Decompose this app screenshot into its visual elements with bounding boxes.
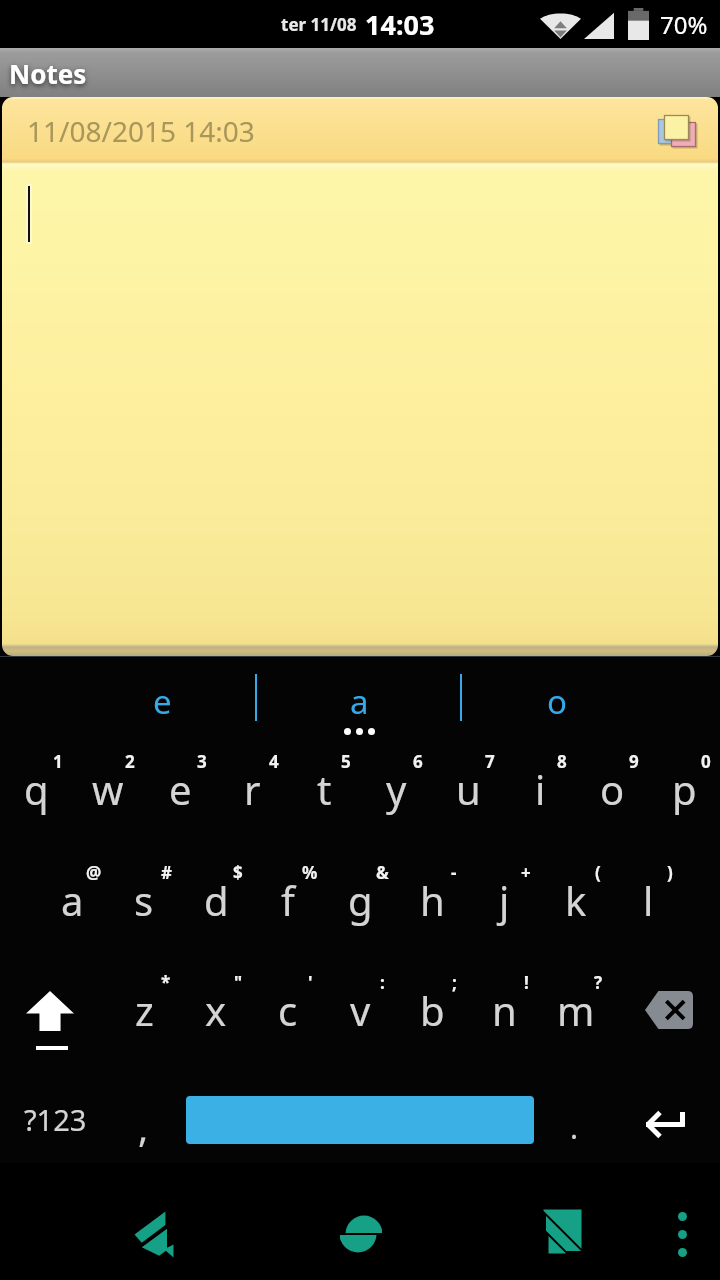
button[interactable]: ? [540, 965, 612, 1065]
button[interactable]: + [468, 855, 540, 955]
staticText: p [672, 762, 697, 816]
button[interactable] [2, 164, 718, 656]
staticText: - [451, 861, 457, 884]
staticText: + [521, 861, 531, 884]
staticText: " [234, 971, 243, 994]
staticText: n [492, 983, 517, 1037]
button[interactable]: * [108, 965, 180, 1065]
button[interactable]: 4 [216, 744, 288, 844]
staticText: 2 [125, 750, 135, 773]
staticText: o [600, 762, 625, 816]
button[interactable]: % [252, 855, 324, 955]
staticText: $ [233, 861, 243, 884]
staticText: 5 [341, 750, 351, 773]
button[interactable]: a [257, 658, 461, 742]
button[interactable]: ! [468, 965, 540, 1065]
button[interactable]: Note colour [642, 106, 702, 156]
button[interactable]: 0 [648, 744, 720, 844]
staticText: 9 [629, 750, 639, 773]
button[interactable]: - [396, 855, 468, 955]
staticText: & [376, 861, 389, 884]
button[interactable]: o [462, 658, 720, 742]
staticText: 70% [660, 8, 708, 41]
staticText: ' [308, 971, 313, 994]
staticText: % [302, 861, 318, 884]
staticText: 3 [197, 750, 207, 773]
staticText: ; [452, 971, 457, 994]
button[interactable]: ( [540, 855, 612, 955]
staticText: 6 [413, 750, 423, 773]
staticText: l [643, 873, 654, 927]
staticText: b [420, 983, 445, 1037]
staticText: g [348, 873, 373, 927]
staticText: 4 [269, 750, 279, 773]
staticText: x [205, 983, 227, 1037]
staticText: ? [594, 971, 603, 994]
staticText: 0 [701, 750, 711, 773]
staticText: y [386, 762, 407, 816]
staticText: , [138, 1101, 149, 1153]
button[interactable]: Home [304, 1163, 412, 1278]
button[interactable]: 9 [576, 744, 648, 844]
staticText: : [380, 971, 385, 994]
button[interactable]: Enter [612, 1067, 720, 1163]
button[interactable]: 1 [0, 744, 72, 844]
staticText: u [456, 762, 481, 816]
button[interactable]: : [324, 965, 396, 1065]
button[interactable]: ) [612, 855, 684, 955]
staticText: a [61, 873, 84, 927]
button[interactable]: 5 [288, 744, 360, 844]
staticText: 14:03 [365, 6, 435, 43]
staticText: w [92, 762, 124, 816]
button[interactable]: Shift [0, 965, 108, 1065]
staticText: m [557, 983, 595, 1037]
staticText: ?123 [24, 1100, 87, 1139]
staticText: ( [595, 861, 601, 884]
staticText: e [153, 679, 172, 724]
staticText: 11/08/2015 14:03 [27, 112, 255, 150]
staticText: k [565, 873, 587, 927]
staticText: i [535, 762, 546, 816]
button[interactable]: More options [643, 1163, 720, 1278]
staticText: q [24, 762, 49, 816]
staticText: 8 [557, 750, 567, 773]
staticText: f [281, 873, 295, 927]
button[interactable]: e [0, 658, 256, 742]
button[interactable]: @ [36, 855, 108, 955]
button[interactable]: Space [186, 1067, 534, 1163]
staticText: ) [667, 861, 673, 884]
button[interactable]: ; [396, 965, 468, 1065]
button[interactable]: ?123 [0, 1067, 116, 1163]
button[interactable]: & [324, 855, 396, 955]
staticText: t [317, 762, 332, 816]
staticText: d [204, 873, 229, 927]
button[interactable]: " [180, 965, 252, 1065]
button[interactable]: ' [252, 965, 324, 1065]
button[interactable]: 7 [432, 744, 504, 844]
button[interactable]: # [108, 855, 180, 955]
staticText: ter 11/08 [281, 13, 357, 36]
staticText: z [135, 983, 154, 1037]
staticText: v [350, 983, 371, 1037]
staticText: * [161, 971, 171, 994]
button[interactable]: 11/08/2015 14:03 [2, 97, 718, 164]
staticText: a [350, 679, 369, 724]
button[interactable]: . [534, 1067, 612, 1163]
staticText: . [570, 1107, 579, 1148]
button[interactable]: 2 [72, 744, 144, 844]
button[interactable]: $ [180, 855, 252, 955]
staticText: r [244, 762, 261, 816]
button[interactable]: , [116, 1067, 186, 1163]
button[interactable]: 8 [504, 744, 576, 844]
staticText: j [499, 873, 510, 927]
staticText: ! [524, 971, 529, 994]
staticText: e [169, 762, 192, 816]
staticText: @ [86, 861, 102, 884]
button[interactable]: 6 [360, 744, 432, 844]
button[interactable]: Backspace [612, 965, 720, 1065]
staticText: # [161, 861, 172, 884]
staticText: s [134, 873, 154, 927]
button[interactable]: 3 [144, 744, 216, 844]
button[interactable]: Recents [511, 1163, 619, 1278]
button[interactable]: Back [100, 1163, 208, 1278]
